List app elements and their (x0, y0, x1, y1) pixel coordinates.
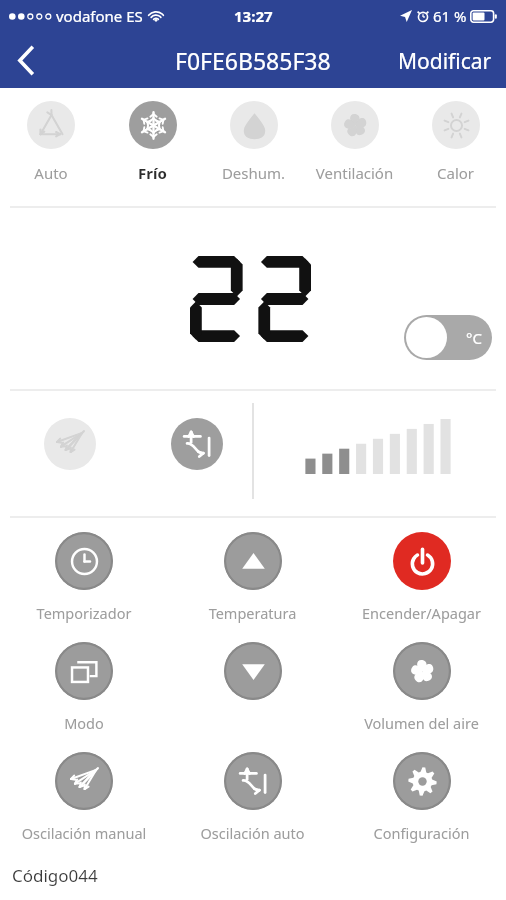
staticText: Ventilación (304, 163, 405, 183)
button[interactable]: Auto (0, 88, 102, 206)
button[interactable]: Atrás (0, 32, 52, 88)
staticText: Modificar (398, 47, 492, 73)
button[interactable]: Cambiar unidad de temperatura (404, 315, 492, 360)
staticText: Calor (405, 163, 506, 183)
staticText: Configuración (337, 823, 506, 843)
staticText: Temporizador (0, 603, 168, 623)
staticText: Oscilación auto (168, 823, 337, 843)
button[interactable]: Deshum. (203, 88, 304, 206)
staticText: Oscilación manual (0, 823, 168, 843)
button[interactable]: Oscilación auto (168, 746, 337, 856)
staticText: 13:27 (234, 6, 273, 26)
button[interactable]: Ventilación (304, 88, 405, 206)
button[interactable]: Bajar temperatura (168, 636, 337, 746)
staticText: Modo (0, 713, 168, 733)
button[interactable]: Modo (0, 636, 168, 746)
staticText: 61 % (433, 6, 467, 26)
button[interactable]: Encender/Apagar (337, 526, 506, 636)
button[interactable]: Configuración (337, 746, 506, 856)
staticText: Temperatura (168, 603, 337, 623)
staticText: Código044 (12, 864, 98, 887)
staticText: Volumen del aire (337, 713, 506, 733)
staticText: Auto (0, 163, 102, 183)
button[interactable]: Temperatura (168, 526, 337, 636)
staticText: °C (466, 328, 482, 348)
staticText: Encender/Apagar (337, 603, 506, 623)
staticText: Frío (102, 163, 203, 183)
staticText: Deshum. (203, 163, 304, 183)
button[interactable]: Frío (102, 88, 203, 206)
button[interactable]: Oscilación automática (171, 418, 223, 470)
staticText: vodafone ES (56, 6, 143, 26)
button[interactable]: Temporizador (0, 526, 168, 636)
button[interactable]: Volumen del aire (337, 636, 506, 746)
button[interactable]: Oscilación manual (44, 418, 96, 470)
button[interactable]: Modificar (384, 32, 506, 88)
button[interactable]: Velocidad del ventilador (302, 419, 454, 474)
button[interactable]: Oscilación manual (0, 746, 168, 856)
button[interactable]: Calor (405, 88, 506, 206)
staticText: F0FE6B585F38 (175, 45, 331, 76)
